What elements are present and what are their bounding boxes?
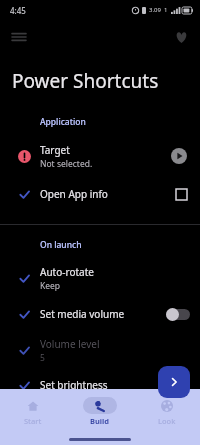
staticText: 3.09 bbox=[149, 6, 161, 14]
button[interactable]: Build bbox=[66, 389, 133, 433]
button[interactable]: Set media volume toggle bbox=[166, 307, 190, 321]
button[interactable]: Open App info bbox=[0, 176, 200, 212]
staticText: Set media volume bbox=[40, 307, 166, 321]
staticText: Target bbox=[40, 143, 70, 157]
staticText: Volume level bbox=[40, 337, 100, 351]
staticText: Start bbox=[24, 416, 42, 426]
button[interactable]: Menu bbox=[6, 24, 32, 50]
staticText: 1 bbox=[164, 6, 168, 14]
staticText: Set brightness bbox=[40, 378, 108, 392]
button[interactable]: Set brightness bbox=[0, 369, 200, 401]
button[interactable]: Play bbox=[166, 143, 192, 169]
staticText: 4:45 bbox=[10, 5, 26, 16]
staticText: Not selected. bbox=[40, 158, 93, 170]
staticText: On launch bbox=[40, 239, 82, 251]
staticText: 5 bbox=[40, 352, 45, 364]
button[interactable]: Start bbox=[0, 389, 66, 433]
button[interactable]: Look bbox=[133, 389, 200, 433]
button[interactable]: Volume level bbox=[0, 331, 200, 369]
staticText: Build bbox=[90, 416, 110, 426]
staticText: Look bbox=[158, 416, 176, 426]
staticText: Application bbox=[40, 116, 86, 128]
staticText: Power Shortcuts bbox=[12, 68, 159, 94]
button[interactable]: Next bbox=[158, 366, 190, 398]
button[interactable]: Target bbox=[0, 136, 200, 176]
button[interactable]: Favorite bbox=[168, 24, 194, 50]
button[interactable]: Open App info checkbox bbox=[170, 183, 192, 205]
staticText: Auto-rotate bbox=[40, 265, 94, 279]
staticText: Open App info bbox=[40, 187, 170, 201]
button[interactable]: Set media volume bbox=[0, 297, 200, 331]
button[interactable]: Auto-rotate bbox=[0, 259, 200, 297]
staticText: Keep bbox=[40, 280, 61, 292]
